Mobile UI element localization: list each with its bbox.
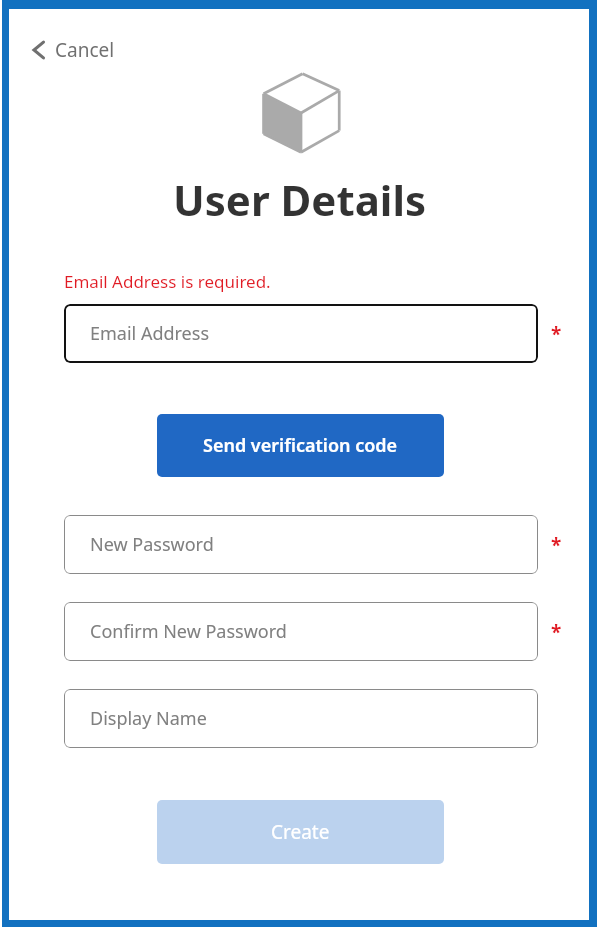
staticText: Create bbox=[271, 819, 330, 845]
button[interactable]: Email Address bbox=[64, 304, 538, 363]
staticText: Email Address is required. bbox=[64, 270, 271, 293]
button[interactable]: Confirm New Password bbox=[64, 602, 538, 661]
staticText: * bbox=[551, 321, 562, 347]
staticText: Email Address bbox=[90, 321, 210, 346]
button[interactable]: Create bbox=[157, 800, 444, 864]
staticText: New Password bbox=[90, 532, 214, 557]
staticText: Confirm New Password bbox=[90, 619, 287, 644]
staticText: Cancel bbox=[55, 37, 115, 63]
staticText: * bbox=[551, 619, 562, 645]
staticText: Display Name bbox=[90, 706, 207, 731]
button[interactable]: Display Name bbox=[64, 689, 538, 748]
staticText: * bbox=[551, 532, 562, 558]
button[interactable]: New Password bbox=[64, 515, 538, 574]
staticText: Send verification code bbox=[203, 433, 398, 458]
button[interactable]: Cancel bbox=[28, 35, 119, 65]
staticText: User Details bbox=[173, 171, 426, 228]
button[interactable]: Send verification code bbox=[157, 414, 444, 477]
